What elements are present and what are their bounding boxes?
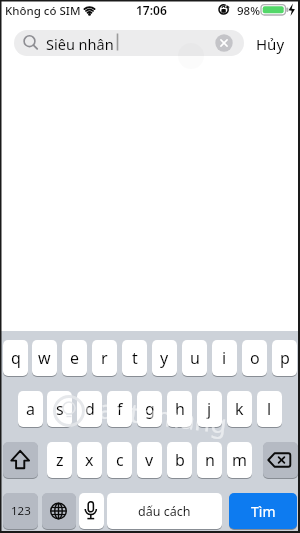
button[interactable] [3,442,38,478]
staticText: Hủy [256,34,285,54]
staticText: uantrimang [81,388,230,441]
button[interactable]: e [62,340,87,376]
button[interactable]: n [197,442,222,478]
staticText: b [175,449,185,471]
button[interactable]: r [92,340,117,376]
staticText: 98% [237,3,260,19]
button[interactable]: Tìm [229,493,297,529]
button[interactable]: l [257,391,282,427]
button[interactable]: w [32,340,57,376]
staticText: l [267,398,272,420]
button[interactable]: t [122,340,147,376]
button[interactable]: z [47,442,72,478]
staticText: k [235,398,244,420]
button[interactable]: v [137,442,162,478]
staticText: t [132,347,138,369]
staticText: dấu cách [138,503,191,520]
staticText: i [222,347,227,369]
button[interactable]: s [47,391,72,427]
staticText: e [70,347,80,369]
staticText: d [85,398,95,420]
staticText: Không có SIM [5,3,81,19]
staticText: a [26,398,35,420]
button[interactable] [250,28,294,58]
staticText: x [85,449,94,471]
button[interactable]: 123 [3,493,38,529]
staticText: z [56,449,64,471]
staticText: n [205,449,215,471]
staticText: j [207,398,212,420]
button[interactable]: u [182,340,207,376]
button[interactable]: i [212,340,237,376]
staticText: 17:06 [136,2,167,18]
button[interactable] [14,30,244,56]
button[interactable]: f [107,391,132,427]
button[interactable]: o [242,340,267,376]
staticText: s [56,398,64,420]
button[interactable] [79,493,104,529]
button[interactable]: m [227,442,252,478]
staticText: c [116,449,124,471]
button[interactable]: b [167,442,192,478]
staticText: r [101,347,108,369]
button[interactable]: p [272,340,297,376]
staticText: m [232,449,247,471]
button[interactable]: c [107,442,132,478]
staticText: u [190,347,200,369]
button[interactable]: x [77,442,102,478]
staticText: w [38,347,51,369]
staticText: Tìm [251,502,276,521]
button[interactable] [263,442,298,478]
staticText: o [250,347,260,369]
button[interactable]: q [3,340,28,376]
button[interactable]: j [197,391,222,427]
staticText: y [160,347,169,369]
button[interactable]: g [137,391,162,427]
staticText: Siêu nhân [46,34,114,54]
staticText: f [117,398,123,420]
button[interactable]: dấu cách [107,493,222,529]
button[interactable] [42,493,76,529]
staticText: h [175,398,185,420]
staticText: q [11,347,21,369]
button[interactable]: d [77,391,102,427]
button[interactable]: h [167,391,192,427]
button[interactable]: y [152,340,177,376]
button[interactable]: a [18,391,43,427]
button[interactable]: k [227,391,252,427]
staticText: g [145,398,155,420]
staticText: 123 [11,503,31,519]
staticText: p [280,347,290,369]
staticText: v [145,449,154,471]
